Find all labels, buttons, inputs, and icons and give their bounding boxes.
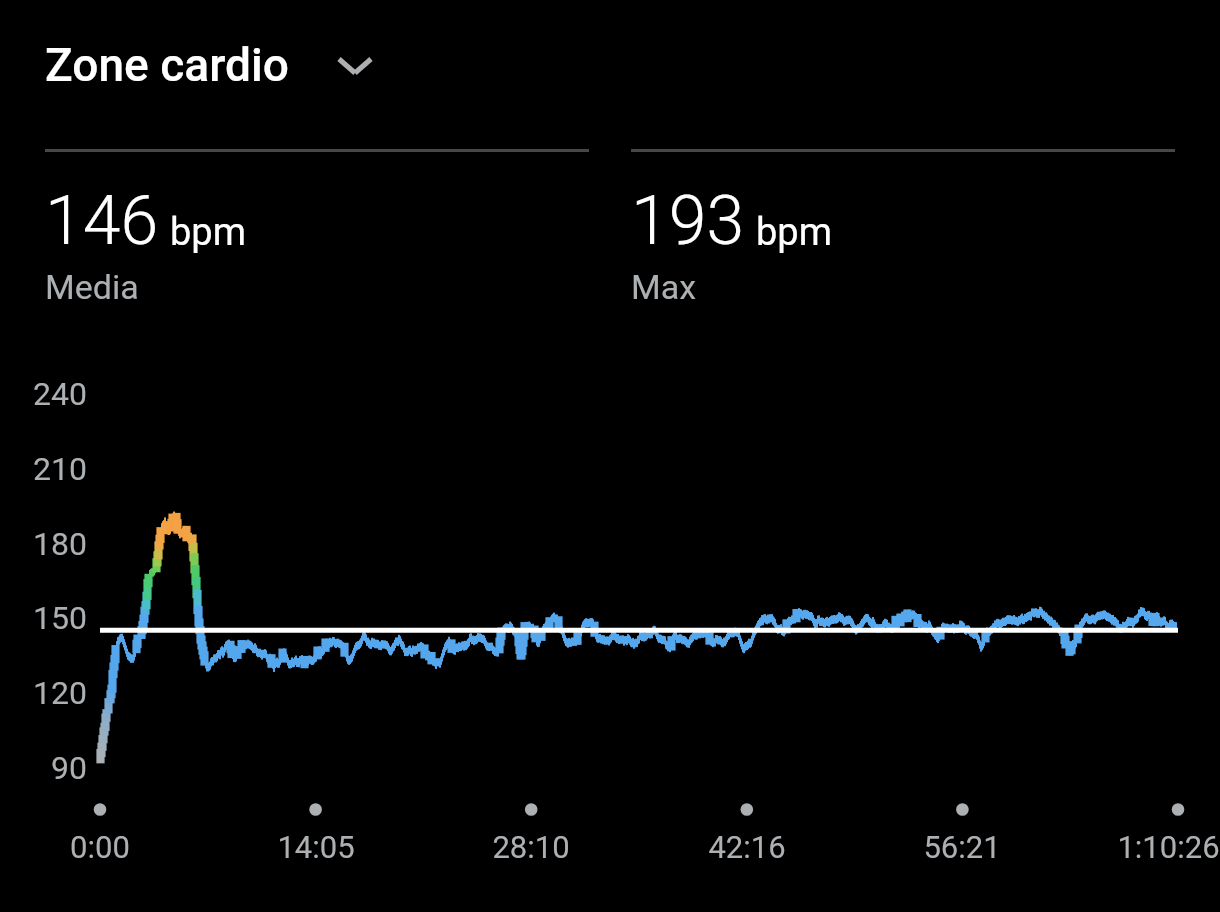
staticText: 240 [33, 375, 87, 413]
staticText: bpm [756, 210, 832, 255]
staticText: 193 [631, 181, 745, 261]
staticText: 0:00 [70, 829, 130, 865]
staticText: 90 [51, 749, 87, 787]
staticText: 150 [33, 599, 87, 637]
staticText: 120 [33, 674, 87, 712]
staticText: Max [631, 267, 697, 307]
staticText: 146 [45, 181, 159, 261]
staticText: Zone cardio [45, 38, 289, 92]
staticText: 1:10:26 [1117, 829, 1220, 865]
staticText: 42:16 [708, 829, 786, 865]
staticText: Media [45, 267, 139, 307]
staticText: 56:21 [923, 829, 1001, 865]
staticText: 14:05 [277, 829, 355, 865]
staticText: bpm [170, 210, 246, 255]
staticText: 210 [33, 450, 87, 488]
staticText: 180 [33, 525, 87, 563]
button[interactable]: Zone cardio [45, 30, 377, 100]
staticText: 28:10 [492, 829, 570, 865]
other: Expand [333, 43, 377, 87]
